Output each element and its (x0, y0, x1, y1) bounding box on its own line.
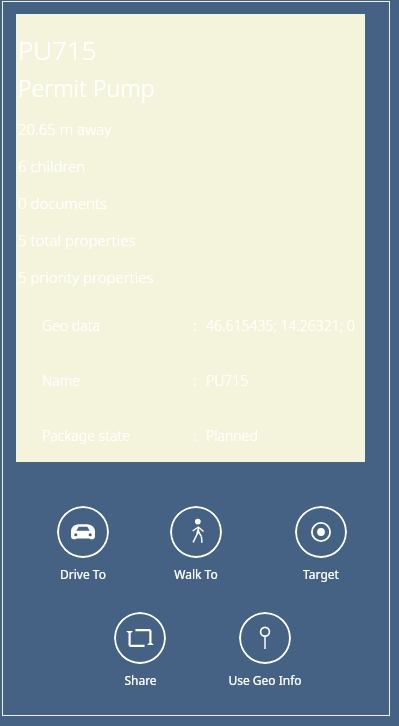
staticText: : (193, 316, 197, 335)
staticText: Geo data (42, 316, 100, 335)
button[interactable]: Share (94, 612, 186, 688)
staticText: Use Geo Info (228, 672, 302, 688)
staticText: Drive To (60, 566, 106, 582)
staticText: 0 documents (18, 193, 108, 213)
staticText: 5 priority properties (18, 267, 154, 287)
staticText: Share (124, 672, 157, 688)
staticText: 6 children (18, 156, 86, 176)
staticText: Name (42, 371, 80, 390)
button[interactable]: Target (275, 506, 367, 582)
staticText: 20.65 m away (18, 119, 112, 139)
staticText: : (193, 371, 197, 390)
staticText: 5 total properties (18, 230, 136, 250)
button[interactable]: Walk To (150, 506, 242, 582)
staticText: Walk To (174, 566, 218, 582)
staticText: Planned (206, 426, 258, 445)
button[interactable]: Use Geo Info (219, 612, 311, 688)
staticText: 46.615435; 14.26321; 0 (206, 316, 355, 335)
staticText: Package state (42, 426, 130, 445)
staticText: Permit Pump (18, 72, 155, 103)
staticText: PU715 (206, 371, 249, 390)
staticText: PU715 (18, 32, 97, 67)
staticText: Target (303, 566, 339, 582)
button[interactable]: Drive To (37, 506, 129, 582)
staticText: : (193, 426, 197, 445)
